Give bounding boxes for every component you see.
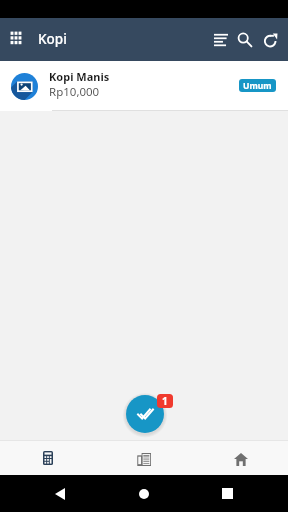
button[interactable]: Recents: [212, 479, 242, 508]
button[interactable]: News: [96, 440, 192, 475]
staticText: Rp10,000: [49, 84, 100, 100]
button[interactable]: Sort: [207, 24, 234, 55]
button[interactable]: Umum: [239, 79, 276, 92]
button[interactable]: Apps: [3, 22, 29, 53]
staticText: Umum: [243, 80, 272, 92]
button[interactable]: Back: [45, 479, 75, 508]
staticText: Kopi Manis: [49, 69, 110, 84]
staticText: 1: [162, 394, 168, 408]
button[interactable]: Home: [129, 479, 159, 508]
button[interactable]: Kopi Manis: [0, 61, 288, 111]
button[interactable]: Mark all read: [126, 395, 164, 433]
staticText: Kopi: [38, 30, 67, 48]
button[interactable]: Refresh: [258, 23, 284, 56]
button[interactable]: Home: [192, 440, 288, 475]
button[interactable]: Calculator: [0, 440, 96, 475]
button[interactable]: Search: [232, 23, 258, 56]
